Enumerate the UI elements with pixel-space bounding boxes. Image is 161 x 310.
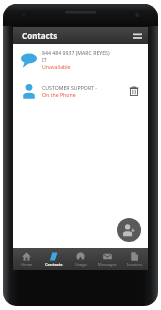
staticText: Messages: [98, 262, 117, 267]
staticText: Contacts: [45, 262, 63, 267]
button[interactable]: Home: [13, 248, 40, 270]
staticText: 844 484 9937 (MARC REYES): [42, 49, 110, 56]
staticText: Unavailable: [42, 63, 71, 70]
staticText: Home: [21, 262, 33, 267]
button[interactable]: CUSTOMER SUPPORT -: [13, 75, 148, 106]
staticText: Contacts: [22, 30, 58, 41]
button[interactable]: Add contact: [117, 218, 141, 242]
button[interactable]: Usage: [67, 248, 94, 270]
button[interactable]: Menu: [130, 29, 144, 43]
button[interactable]: Contacts: [40, 248, 67, 270]
staticText: IT: [42, 56, 47, 63]
button[interactable]: Invoices: [121, 248, 148, 270]
button[interactable]: Messages: [94, 248, 121, 270]
staticText: On the Phone: [42, 91, 76, 98]
staticText: Invoices: [127, 262, 143, 267]
staticText: CUSTOMER SUPPORT -: [42, 84, 98, 91]
button[interactable]: Delete: [126, 83, 142, 99]
button[interactable]: 844 484 9937 (MARC REYES): [13, 44, 148, 75]
staticText: Usage: [75, 262, 87, 267]
